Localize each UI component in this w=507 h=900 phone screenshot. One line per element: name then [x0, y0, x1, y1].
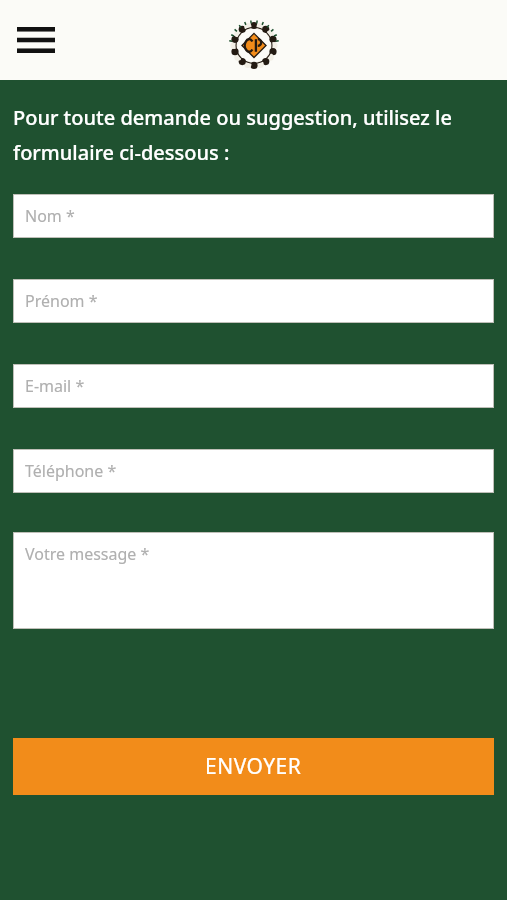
- button[interactable]: Prénom: [13, 279, 494, 323]
- staticText: Votre message *: [25, 543, 150, 565]
- staticText: E-mail *: [25, 375, 85, 397]
- staticText: Nom *: [25, 205, 75, 227]
- staticText: Prénom *: [25, 290, 98, 312]
- button[interactable]: Menu: [10, 14, 62, 66]
- button[interactable]: E-mail: [13, 364, 494, 408]
- staticText: Téléphone *: [25, 460, 117, 482]
- button[interactable]: ENVOYER: [13, 738, 494, 795]
- staticText: ENVOYER: [205, 752, 302, 781]
- button[interactable]: Caesar Pizza home: [223, 11, 285, 73]
- staticText: Pour toute demande ou suggestion, utilis…: [13, 104, 494, 166]
- button[interactable]: Téléphone: [13, 449, 494, 493]
- button[interactable]: Votre message: [13, 532, 494, 629]
- button[interactable]: Nom: [13, 194, 494, 238]
